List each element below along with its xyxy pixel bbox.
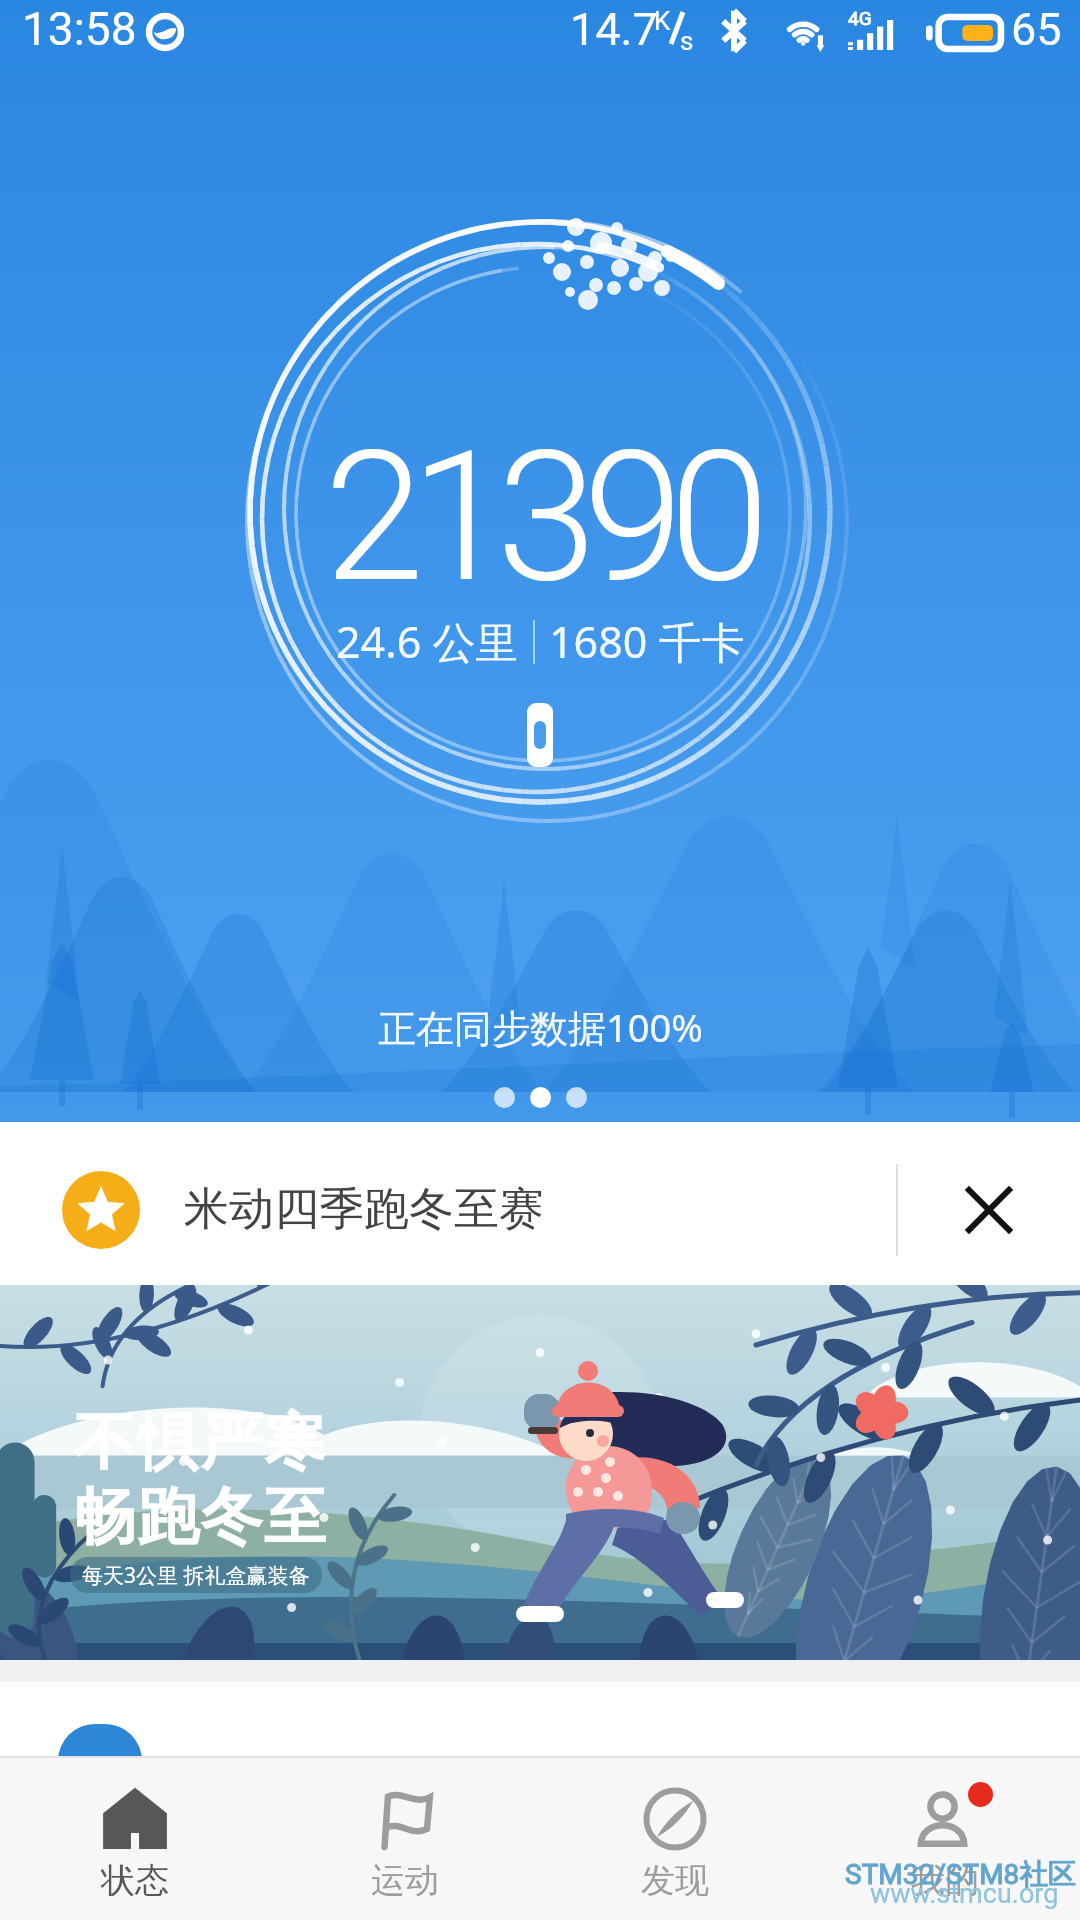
button[interactable]: 我的 [810,1756,1080,1920]
staticText: 4G [848,7,872,29]
staticText: 24.6 公里 [336,612,519,671]
staticText: 21390 [324,412,756,623]
staticText: s [680,26,694,56]
staticText: 65 [1011,3,1062,56]
button[interactable]: 米动四季跑冬至赛 [0,1122,896,1285]
staticText: 每天3公里 拆礼盒赢装备 [82,1561,310,1590]
button[interactable]: 运动 [270,1756,540,1920]
staticText: STM32/STM8社区 [845,1857,1076,1892]
button[interactable]: 发现 [540,1756,810,1920]
button[interactable]: 状态 [0,1756,270,1920]
staticText: 1680 千卡 [549,612,745,671]
staticText: 状态 [101,1859,169,1902]
staticText: 13:58 [22,2,137,56]
button[interactable]: 不惧严寒 [0,1285,1080,1660]
staticText: 发现 [641,1859,709,1902]
button[interactable]: Close [898,1122,1080,1285]
staticText: 畅跑冬至 [74,1478,327,1556]
staticText: www.stmcu.org [870,1878,1059,1910]
staticText: 正在同步数据100% [378,1001,703,1053]
staticText: 我的 [911,1859,979,1902]
staticText: K [654,6,671,36]
staticText: 米动四季跑冬至赛 [184,1181,544,1238]
staticText: 运动 [371,1859,439,1902]
staticText: 14.7 [570,3,658,56]
staticText: 不惧严寒 [74,1403,327,1481]
